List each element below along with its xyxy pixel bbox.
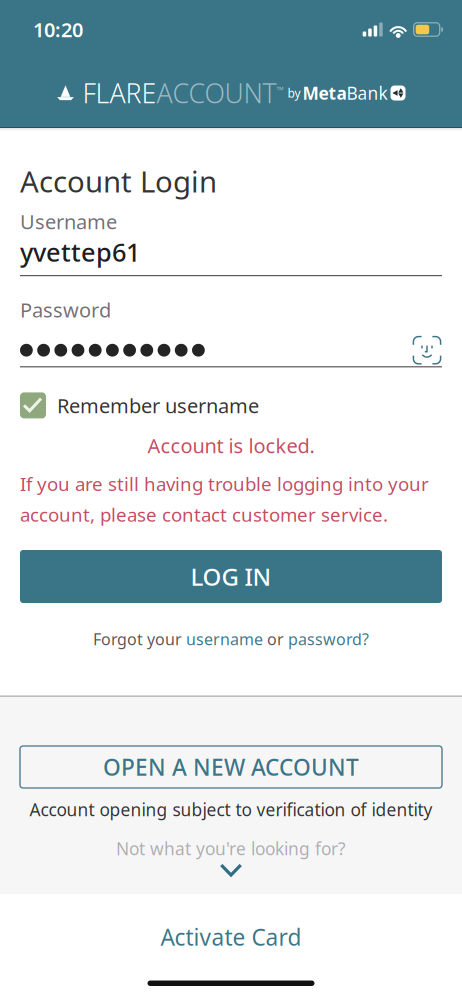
staticText: by: [287, 85, 300, 101]
button[interactable]: username: [186, 628, 263, 650]
staticText: or: [263, 628, 288, 650]
button[interactable]: LOG IN: [20, 550, 442, 603]
staticText: FLARE: [82, 75, 156, 111]
staticText: Account opening subject to verification …: [29, 798, 432, 821]
staticText: password?: [288, 628, 369, 650]
staticText: Account Login: [20, 161, 217, 200]
staticText: Password: [20, 296, 111, 323]
staticText: 10:20: [33, 16, 83, 43]
staticText: username: [186, 628, 263, 650]
staticText: Not what you're looking for?: [116, 837, 346, 860]
staticText: ™: [276, 84, 283, 96]
staticText: Meta: [302, 81, 346, 104]
staticText: yvettep61: [20, 235, 140, 269]
staticText: If you are still having trouble logging …: [20, 471, 429, 527]
button[interactable]: password?: [288, 628, 369, 650]
button[interactable]: Remember username: [20, 392, 442, 418]
button[interactable]: Activate Card: [160, 922, 301, 952]
button[interactable]: Sign in with Face ID: [412, 335, 442, 365]
staticText: Activate Card: [160, 922, 301, 952]
staticText: ACCOUNT: [156, 75, 276, 111]
staticText: Bank: [346, 81, 387, 104]
button[interactable]: Show more options: [219, 860, 242, 878]
staticText: OPEN A NEW ACCOUNT: [103, 752, 359, 782]
staticText: Forgot your: [93, 628, 186, 650]
staticText: LOG IN: [190, 560, 271, 592]
staticText: Username: [20, 208, 117, 235]
staticText: Account is locked.: [147, 432, 314, 459]
staticText: Remember username: [57, 392, 259, 419]
button[interactable]: OPEN A NEW ACCOUNT: [20, 746, 442, 788]
